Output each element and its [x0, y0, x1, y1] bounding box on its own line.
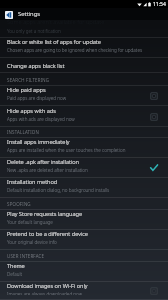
staticText: Your default language	[7, 219, 53, 225]
staticText: SPOOFING	[7, 201, 31, 207]
button[interactable]: Play Store requests language	[0, 210, 168, 230]
staticText: Download images on Wi-Fi only	[7, 282, 88, 290]
staticText: Black or white list of apps for update	[7, 38, 101, 46]
staticText: Your original device info	[7, 239, 57, 245]
button[interactable]: Download images on Wi-Fi only	[0, 282, 168, 300]
staticText: INSTALLATION	[7, 129, 39, 135]
staticText: Change apps black list	[7, 62, 65, 70]
staticText: Default installation dialog, no backgrou…	[7, 187, 110, 193]
button[interactable]: Navigate up	[3, 9, 14, 20]
button[interactable]: Pretend to be a different device	[0, 230, 168, 250]
staticText: New .apks are deleted after installation	[7, 167, 88, 173]
button[interactable]: Change apps black list	[0, 58, 168, 73]
staticText: Default	[7, 271, 23, 277]
staticText: Chosen apps are going to be ignored when…	[7, 47, 143, 53]
staticText: Install apps immediately	[7, 138, 70, 146]
staticText: Theme	[7, 262, 25, 270]
staticText: Delete .apk after installation	[7, 158, 79, 166]
staticText: SEARCH FILTERING	[7, 77, 50, 83]
staticText: Installation method	[7, 178, 58, 186]
staticText: Hide paid apps	[7, 86, 46, 94]
staticText: Play Store requests language	[7, 210, 83, 218]
staticText: You only get a notification	[7, 28, 61, 34]
button[interactable]: Delete .apk after installation	[0, 158, 168, 178]
staticText: Apps with ads are displayed now	[7, 116, 75, 122]
button[interactable]: Theme	[0, 262, 168, 282]
staticText: Paid apps are displayed now	[7, 95, 67, 101]
button[interactable]: Hide apps with ads	[0, 106, 168, 127]
button[interactable]: Black or white list of apps for update	[0, 38, 168, 58]
staticText: Apps are installed when the user touches…	[7, 147, 146, 153]
button[interactable]: Installation method	[0, 178, 168, 198]
staticText: Pretend to be a different device	[7, 230, 88, 238]
staticText: Hide apps with ads	[7, 107, 56, 115]
staticText: 11:54	[153, 1, 166, 8]
button[interactable]: Install apps immediately	[0, 138, 168, 158]
staticText: Images are always downloaded now	[7, 291, 83, 295]
staticText: Settings	[18, 10, 41, 18]
staticText: USER INTERFACE	[7, 253, 45, 259]
button[interactable]: Hide paid apps	[0, 86, 168, 106]
